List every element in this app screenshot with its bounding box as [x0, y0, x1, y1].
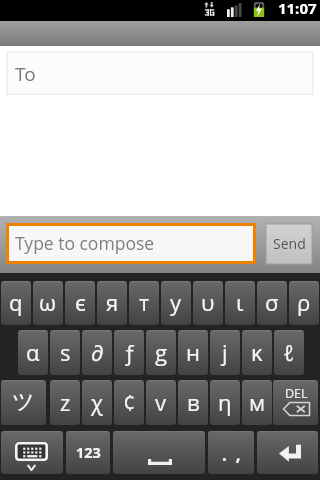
staticText: σ	[265, 287, 279, 317]
button[interactable]: Enter	[257, 431, 318, 474]
staticText: т	[139, 287, 150, 317]
button[interactable]: ι	[225, 281, 255, 325]
staticText: ツ	[12, 388, 35, 416]
staticText: ¢	[123, 387, 136, 417]
button[interactable]: Space	[113, 431, 205, 474]
button[interactable]: ¢	[114, 380, 144, 425]
staticText: y	[170, 287, 182, 317]
staticText: j	[222, 337, 228, 367]
staticText: q	[9, 287, 23, 317]
button[interactable]: Shift	[1, 380, 46, 425]
button[interactable]: м	[242, 380, 272, 425]
button[interactable]: z	[50, 380, 80, 425]
staticText: ω	[39, 287, 57, 317]
button[interactable]: q	[1, 281, 31, 325]
staticText: α	[26, 337, 40, 367]
button[interactable]: т	[129, 281, 159, 325]
button[interactable]: η	[210, 380, 240, 425]
staticText: DEL	[285, 385, 308, 402]
staticText: . ,	[222, 443, 241, 466]
staticText: ϵ	[75, 287, 86, 317]
staticText: η	[218, 387, 232, 417]
button[interactable]: Send	[266, 224, 312, 264]
button[interactable]: Type to compose	[6, 223, 256, 264]
button[interactable]: ϵ	[65, 281, 95, 325]
button[interactable]: ρ	[289, 281, 319, 325]
button[interactable]: υ	[193, 281, 223, 325]
button[interactable]: Punctuation	[208, 431, 254, 474]
button[interactable]: ƒ	[114, 330, 144, 375]
button[interactable]: α	[18, 330, 48, 375]
staticText: To	[15, 61, 36, 87]
staticText: я	[106, 287, 119, 317]
button[interactable]: κ	[242, 330, 272, 375]
button[interactable]: Hide keyboard	[1, 431, 63, 474]
button[interactable]: я	[97, 281, 127, 325]
staticText: ℓ	[283, 337, 295, 367]
button[interactable]: Delete	[273, 380, 318, 425]
button[interactable]: χ	[82, 380, 112, 425]
staticText: Send	[273, 234, 306, 253]
staticText: s	[60, 337, 71, 367]
staticText: Type to compose	[15, 231, 155, 255]
staticText: v	[155, 387, 167, 417]
button[interactable]: ∂	[82, 330, 112, 375]
button[interactable]: ω	[33, 281, 63, 325]
button[interactable]: To	[7, 52, 313, 94]
staticText: ƒ	[123, 337, 136, 367]
staticText: g	[155, 337, 168, 367]
button[interactable]: v	[146, 380, 176, 425]
staticText: χ	[91, 387, 104, 417]
staticText: в	[187, 387, 200, 417]
staticText: м	[249, 387, 266, 417]
staticText: z	[60, 387, 71, 417]
button[interactable]: н	[178, 330, 208, 375]
button[interactable]: y	[161, 281, 191, 325]
button[interactable]: s	[50, 330, 80, 375]
button[interactable]: σ	[257, 281, 287, 325]
button[interactable]: в	[178, 380, 208, 425]
staticText: ι	[236, 287, 244, 317]
button[interactable]: ℓ	[274, 330, 304, 375]
staticText: υ	[201, 287, 215, 317]
staticText: ρ	[297, 287, 311, 317]
button[interactable]: g	[146, 330, 176, 375]
staticText: 123	[76, 443, 101, 463]
button[interactable]: 123	[66, 431, 110, 474]
staticText: н	[186, 337, 200, 367]
button[interactable]: j	[210, 330, 240, 375]
staticText: 11:07	[278, 0, 317, 18]
staticText: κ	[251, 337, 263, 367]
staticText: ∂	[91, 337, 104, 367]
